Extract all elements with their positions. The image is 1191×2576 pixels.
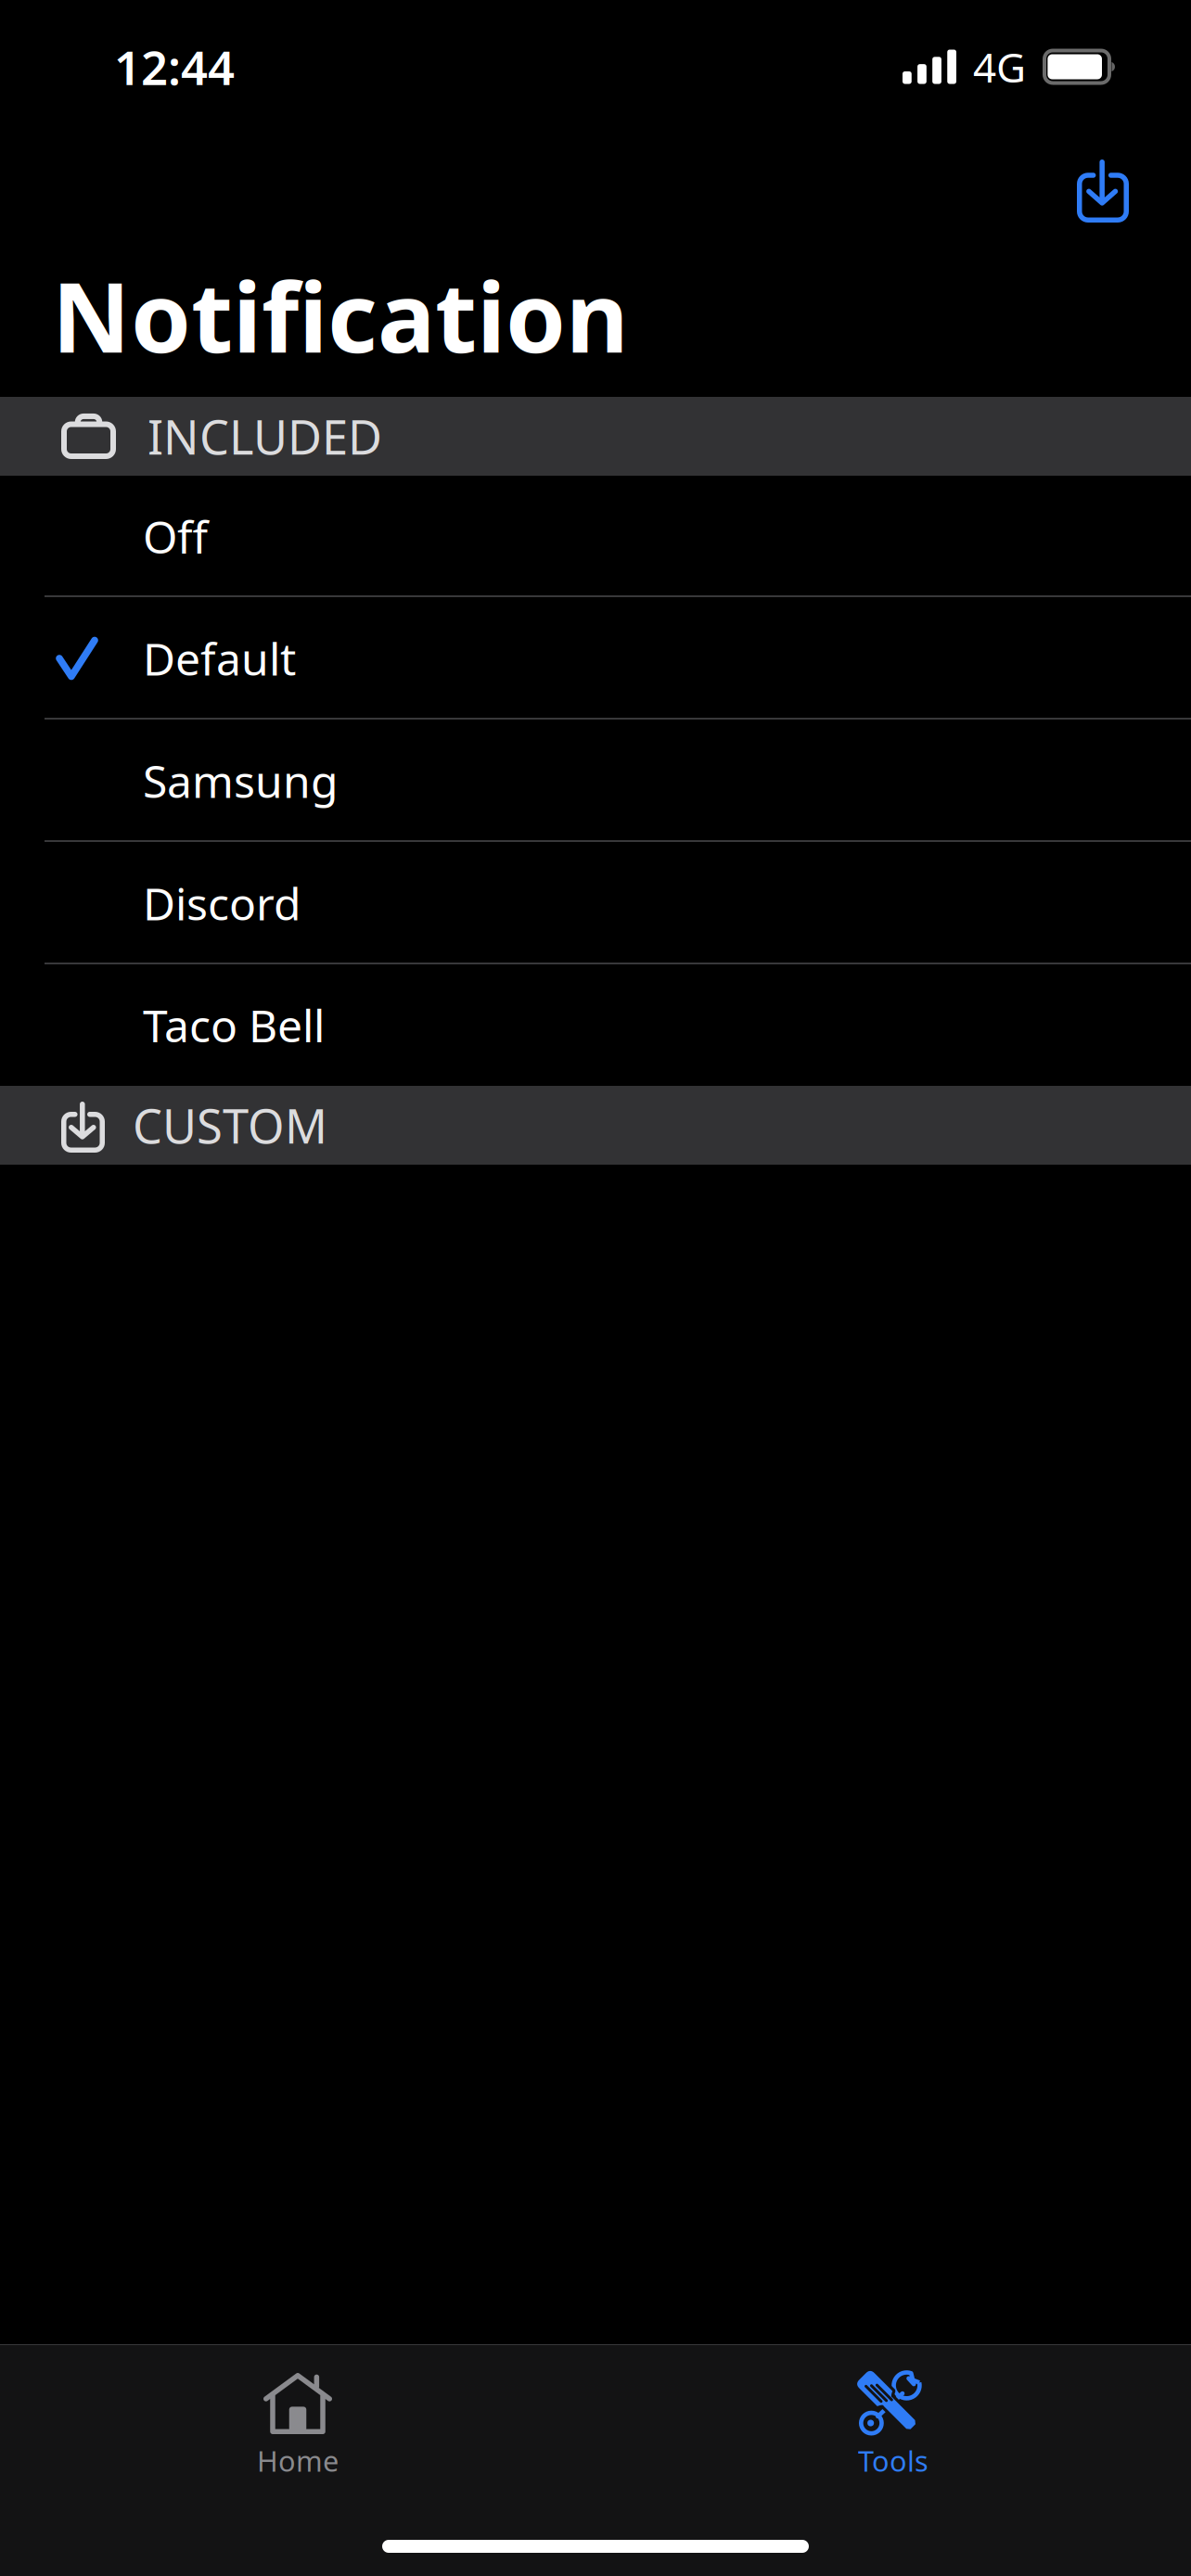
button[interactable]: Off	[0, 476, 1191, 597]
staticText: Discord	[143, 874, 301, 933]
staticText: INCLUDED	[147, 405, 382, 468]
staticText: CUSTOM	[133, 1094, 327, 1157]
staticText: 12:44	[114, 36, 235, 98]
button[interactable]: Discord	[0, 842, 1191, 964]
button[interactable]: Samsung	[0, 720, 1191, 842]
staticText: Home	[257, 2442, 339, 2479]
staticText: Default	[143, 629, 296, 688]
staticText: Notification	[52, 251, 629, 379]
staticText: Tools	[858, 2442, 928, 2479]
button[interactable]: Tools	[595, 2371, 1191, 2499]
staticText: Taco Bell	[143, 996, 325, 1055]
staticText: 4G	[973, 40, 1026, 94]
staticText: Samsung	[143, 751, 339, 810]
button[interactable]: Taco Bell	[0, 964, 1191, 1086]
button[interactable]: Import sound	[1036, 134, 1191, 247]
button[interactable]: Home	[0, 2371, 595, 2499]
staticText: Off	[143, 507, 208, 566]
button[interactable]: Default	[0, 597, 1191, 720]
